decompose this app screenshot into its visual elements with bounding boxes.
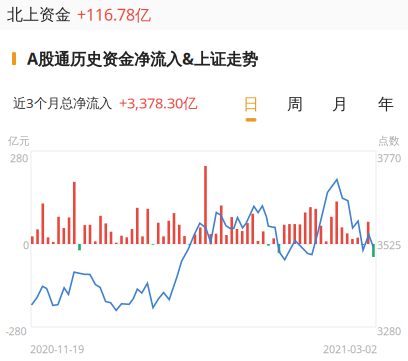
staticText: 0 — [23, 238, 29, 252]
staticText: 2021-03-02 — [323, 342, 377, 356]
staticText: 北上资金 — [7, 5, 71, 24]
staticText: A股通历史资金净流入&上证走势 — [27, 48, 258, 69]
staticText: 280 — [10, 151, 28, 165]
button[interactable]: 月 — [319, 91, 361, 125]
staticText: +116.78亿 — [77, 4, 151, 25]
button[interactable]: 日 — [230, 91, 272, 125]
staticText: +3,378.30亿 — [119, 93, 198, 112]
staticText: 月 — [332, 94, 348, 114]
staticText: -280 — [5, 324, 26, 338]
staticText: 近3个月总净流入 — [13, 94, 112, 112]
staticText: 年 — [378, 94, 394, 114]
staticText: 3770 — [377, 151, 401, 165]
staticText: 日 — [243, 94, 259, 114]
staticText: 3525 — [377, 238, 401, 252]
staticText: 周 — [287, 94, 303, 114]
staticText: 2020-11-19 — [30, 342, 84, 356]
staticText: 亿元 — [8, 134, 30, 147]
staticText: 3280 — [377, 324, 401, 338]
button[interactable]: 周 — [274, 91, 316, 125]
staticText: 点数 — [378, 134, 400, 147]
button[interactable]: 年 — [365, 91, 407, 125]
